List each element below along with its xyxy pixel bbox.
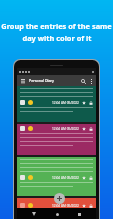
staticText: 12:04 AM 05/2022 (52, 204, 79, 208)
button[interactable]: 12:04 AM 05/2022 (17, 198, 96, 208)
staticText: 12:04 AM 05/2022 (52, 101, 79, 105)
button[interactable]: Menu (20, 78, 26, 84)
staticText: 12:04 AM 05/2022 (52, 127, 79, 131)
button[interactable]: 12:04 AM 05/2022 (17, 86, 96, 122)
button[interactable]: Add entry (54, 193, 65, 204)
staticText: 12:04 AM 05/2022 (52, 176, 79, 180)
button[interactable]: Search (79, 77, 87, 85)
button[interactable]: Lock entry (89, 176, 93, 180)
button[interactable]: Favourite (82, 204, 86, 208)
button[interactable]: Lock entry (89, 101, 93, 105)
button[interactable]: Back (29, 209, 39, 219)
staticText: day with color of it (22, 33, 92, 43)
button[interactable]: More options (87, 77, 95, 85)
button[interactable]: Lock entry (89, 204, 93, 208)
button[interactable]: Favourite (82, 101, 86, 105)
button[interactable]: Lock entry (89, 127, 93, 131)
staticText: Personal Diary (29, 78, 55, 83)
button[interactable]: Favourite (82, 176, 86, 180)
button[interactable]: 12:04 AM 05/2022 (17, 157, 96, 196)
button[interactable]: Home (52, 209, 62, 219)
button[interactable]: Favourite (82, 127, 86, 131)
button[interactable]: Recents (74, 209, 84, 219)
staticText: Group the entries of the same (1, 21, 112, 31)
button[interactable]: 12:04 AM 05/2022 (17, 124, 96, 155)
